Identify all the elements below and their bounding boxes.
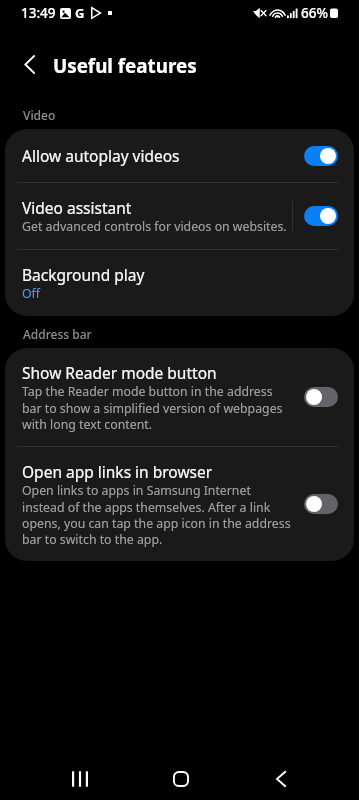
button[interactable]: Navigate up xyxy=(18,53,40,75)
staticText: Show Reader mode button xyxy=(22,362,217,383)
button[interactable]: Toggle xyxy=(304,494,338,514)
button[interactable]: Home xyxy=(157,755,205,800)
staticText: Off xyxy=(22,285,41,302)
staticText: Address bar xyxy=(23,326,92,342)
staticText: Open app links in browser xyxy=(22,461,213,482)
staticText: Tap the Reader mode button in the addres… xyxy=(22,383,292,432)
staticText: 13:49 xyxy=(21,4,56,22)
staticText: Useful features xyxy=(53,53,197,75)
staticText: Allow autoplay videos xyxy=(22,145,180,166)
staticText: G xyxy=(75,4,85,22)
button[interactable]: Allow autoplay videos xyxy=(5,129,354,183)
button[interactable]: Toggle xyxy=(304,146,338,166)
button[interactable]: Show Reader mode button xyxy=(5,348,354,447)
staticText: Video assistant xyxy=(22,197,132,218)
staticText: Background play xyxy=(22,264,145,285)
button[interactable]: Recent apps xyxy=(56,755,104,800)
staticText: Video xyxy=(23,107,56,123)
button[interactable]: Toggle xyxy=(304,206,338,226)
staticText: 66% xyxy=(301,4,328,22)
staticText: Open links to apps in Samsung Internet i… xyxy=(22,482,292,547)
button[interactable]: Background play xyxy=(5,250,354,316)
button[interactable]: Toggle xyxy=(304,387,338,407)
staticText: Get advanced controls for videos on webs… xyxy=(22,218,287,235)
button[interactable]: Open app links in browser xyxy=(5,447,354,561)
button[interactable]: Video assistant xyxy=(5,183,354,250)
button[interactable]: Back xyxy=(257,755,305,800)
